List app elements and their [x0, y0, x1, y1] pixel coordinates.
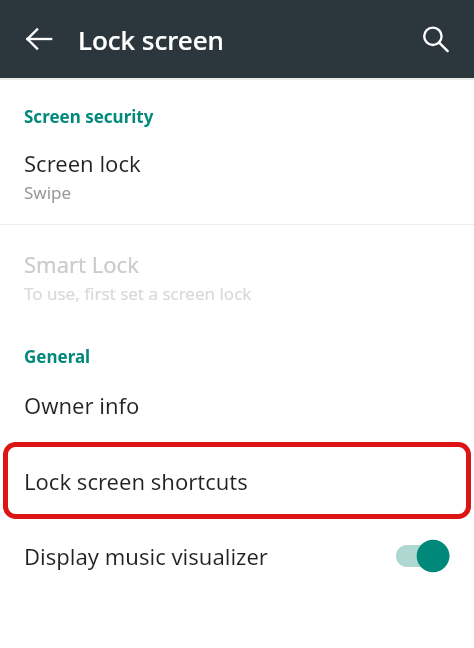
button[interactable]: Smart Lock: [0, 225, 474, 323]
staticText: General: [24, 345, 91, 368]
staticText: Owner info: [24, 390, 140, 420]
staticText: Swipe: [24, 181, 72, 204]
button[interactable]: Back: [12, 12, 66, 66]
staticText: Screen security: [24, 105, 154, 128]
staticText: Screen lock: [24, 148, 141, 178]
staticText: To use, first set a screen lock: [24, 282, 252, 305]
button[interactable]: Screen lock: [0, 128, 474, 224]
staticText: Lock screen shortcuts: [24, 466, 248, 496]
staticText: Display music visualizer: [24, 541, 268, 571]
staticText: Lock screen: [78, 22, 224, 57]
button[interactable]: Display music visualizer: [0, 519, 474, 593]
button[interactable]: Lock screen shortcuts: [3, 442, 471, 519]
staticText: Smart Lock: [24, 249, 139, 279]
button[interactable]: Owner info: [0, 368, 474, 442]
button[interactable]: Search: [408, 12, 462, 66]
button[interactable]: Display music visualizer: [396, 539, 450, 573]
